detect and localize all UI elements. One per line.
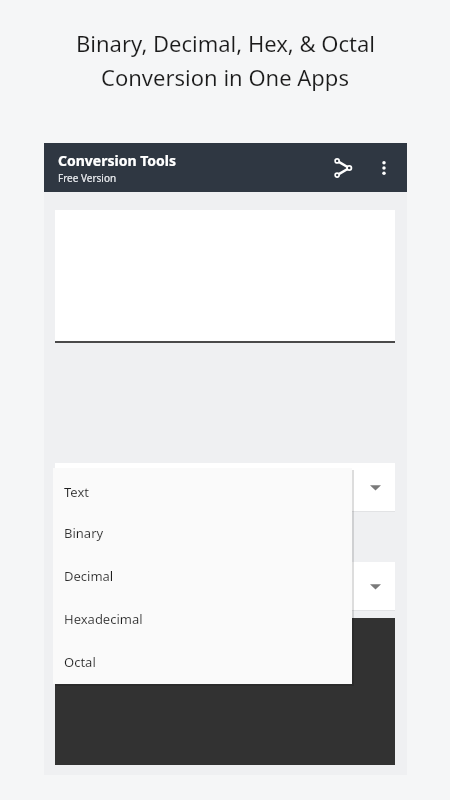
staticText: Binary, Decimal, Hex, & Octal [76,28,375,58]
staticText: Hexadecimal [64,610,143,628]
button[interactable]: More options [367,151,401,185]
button[interactable]: Hexadecimal [53,597,352,640]
staticText: Text [64,483,89,501]
staticText: Free Version [58,171,117,185]
staticText: Binary [64,524,104,542]
button[interactable]: Octal [53,640,352,683]
button[interactable]: Decimal [53,554,352,597]
button[interactable]: Binary [53,511,352,554]
staticText: Decimal [64,567,114,585]
button[interactable]: Select conversion type [55,463,395,512]
staticText: Conversion in One Apps [101,62,349,92]
button[interactable]: Share [325,150,361,186]
button[interactable] [55,210,395,343]
staticText: Conversion Tools [58,151,176,170]
staticText: Octal [64,653,96,671]
button[interactable]: Text [53,470,352,513]
button[interactable] [55,618,395,765]
button[interactable]: Select conversion type [55,562,395,611]
